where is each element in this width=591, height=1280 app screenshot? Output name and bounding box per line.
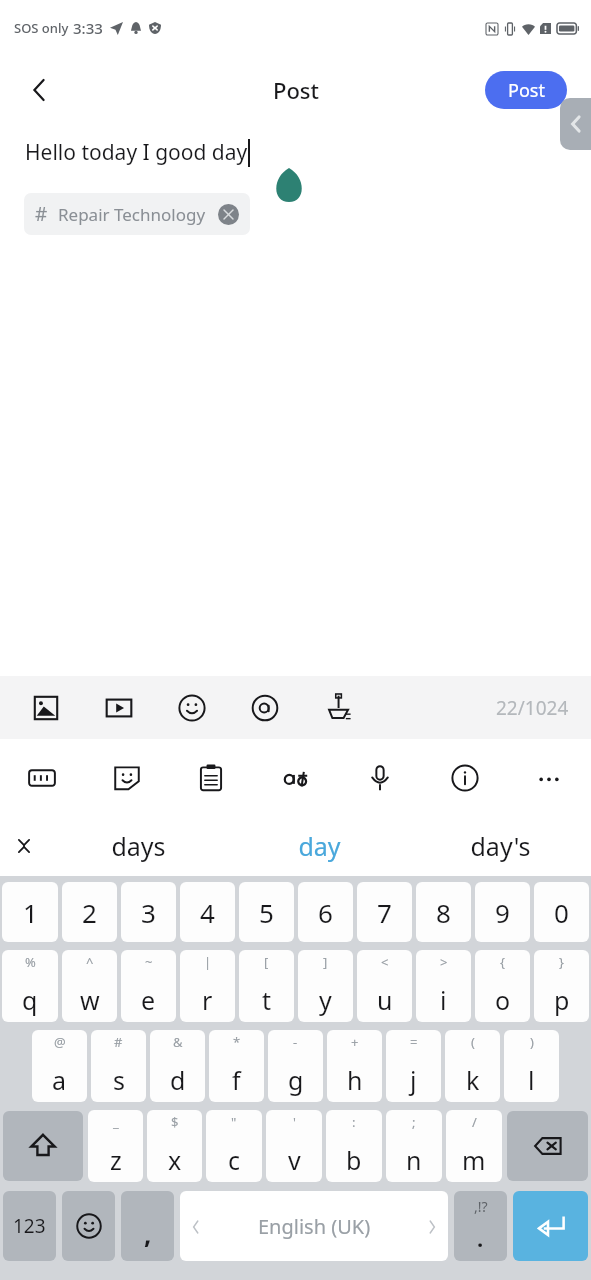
button[interactable]: Clipboard xyxy=(191,758,231,798)
staticText: , xyxy=(144,1216,152,1251)
button[interactable]: ,!? xyxy=(454,1191,507,1261)
staticText: a xyxy=(52,1063,67,1097)
button[interactable]: days xyxy=(48,816,229,876)
button[interactable]: Emoji xyxy=(62,1191,115,1261)
staticText: 6 xyxy=(318,895,333,930)
button[interactable]: Open drawer xyxy=(560,98,591,150)
staticText: & xyxy=(173,1033,183,1051)
button[interactable]: * xyxy=(209,1030,264,1102)
staticText: [ xyxy=(264,953,269,971)
staticText: @ xyxy=(54,1033,66,1051)
button[interactable]: Mention xyxy=(245,688,285,728)
button[interactable]: Info xyxy=(445,758,485,798)
button[interactable]: English (UK) xyxy=(180,1191,448,1261)
staticText: l xyxy=(528,1063,535,1097)
button[interactable]: Add hashtag xyxy=(318,688,358,728)
staticText: # xyxy=(35,201,48,227)
button[interactable]: & xyxy=(150,1030,205,1102)
staticText: | xyxy=(204,953,212,971)
staticText: v xyxy=(288,1143,301,1177)
button[interactable]: ( xyxy=(445,1030,500,1102)
button[interactable]: { xyxy=(475,950,530,1022)
button[interactable]: } xyxy=(534,950,589,1022)
button[interactable]: Collapse suggestions xyxy=(4,826,44,866)
staticText: y xyxy=(319,983,332,1017)
staticText: + xyxy=(351,1033,359,1051)
button[interactable]: Add video xyxy=(99,688,139,728)
button[interactable]: 6 xyxy=(298,882,353,942)
button[interactable]: @ xyxy=(32,1030,87,1102)
button[interactable]: Shift xyxy=(3,1111,83,1181)
staticText: h xyxy=(347,1063,363,1097)
button[interactable]: GIF xyxy=(22,758,62,798)
button[interactable]: - xyxy=(268,1030,323,1102)
staticText: b xyxy=(346,1143,362,1177)
button[interactable]: ^ xyxy=(62,950,117,1022)
button[interactable]: Backspace xyxy=(507,1111,588,1181)
button[interactable]: ; xyxy=(386,1110,442,1182)
staticText: 0 xyxy=(554,895,569,930)
staticText: . xyxy=(477,1223,484,1253)
staticText: ( xyxy=(471,1033,475,1051)
staticText: > xyxy=(440,953,448,971)
button[interactable]: : xyxy=(326,1110,382,1182)
staticText: m xyxy=(462,1143,486,1177)
button[interactable]: # xyxy=(91,1030,146,1102)
button[interactable]: = xyxy=(386,1030,441,1102)
button[interactable]: Post xyxy=(485,71,567,109)
button[interactable]: % xyxy=(2,950,58,1022)
button[interactable]: 0 xyxy=(534,882,589,942)
staticText: 3:33 xyxy=(73,18,103,38)
staticText: z xyxy=(110,1143,122,1177)
button[interactable]: day xyxy=(229,816,410,876)
button[interactable]: Add emoji xyxy=(172,688,212,728)
button[interactable]: Add image xyxy=(26,688,66,728)
staticText: t xyxy=(262,983,272,1017)
staticText: ~ xyxy=(145,953,153,971)
staticText: p xyxy=(554,983,570,1017)
button[interactable]: Voice input xyxy=(360,758,400,798)
staticText: c xyxy=(228,1143,241,1177)
button[interactable]: 7 xyxy=(357,882,412,942)
staticText: " xyxy=(231,1113,237,1131)
button[interactable]: 1 xyxy=(2,882,58,942)
button[interactable]: ' xyxy=(266,1110,322,1182)
staticText: $ xyxy=(171,1113,179,1131)
button[interactable]: | xyxy=(180,950,235,1022)
staticText: i xyxy=(440,983,447,1017)
button[interactable]: 5 xyxy=(239,882,294,942)
staticText: ,!? xyxy=(474,1197,488,1216)
button[interactable]: > xyxy=(416,950,471,1022)
staticText: = xyxy=(410,1033,418,1051)
button[interactable]: , xyxy=(121,1191,174,1261)
button[interactable]: 8 xyxy=(416,882,471,942)
button[interactable]: [ xyxy=(239,950,294,1022)
button[interactable]: ~ xyxy=(121,950,176,1022)
button[interactable]: _ xyxy=(88,1110,143,1182)
button[interactable]: Remove tag xyxy=(218,204,239,225)
button[interactable]: Language xyxy=(276,758,316,798)
button[interactable]: ) xyxy=(504,1030,559,1102)
button[interactable]: day's xyxy=(410,816,591,876)
button[interactable]: ] xyxy=(298,950,353,1022)
button[interactable]: < xyxy=(357,950,412,1022)
staticText: - xyxy=(293,1033,298,1051)
button[interactable]: 4 xyxy=(180,882,235,942)
button[interactable]: + xyxy=(327,1030,382,1102)
button[interactable]: / xyxy=(446,1110,502,1182)
button[interactable]: 2 xyxy=(62,882,117,942)
button[interactable]: Back xyxy=(16,66,64,114)
button[interactable]: $ xyxy=(147,1110,202,1182)
staticText: 8 xyxy=(436,895,451,930)
staticText: ; xyxy=(412,1113,416,1131)
button[interactable]: # xyxy=(24,193,250,235)
button[interactable]: 123 xyxy=(3,1191,56,1261)
button[interactable]: Enter xyxy=(513,1191,588,1261)
button[interactable]: 3 xyxy=(121,882,176,942)
button[interactable]: 9 xyxy=(475,882,530,942)
button[interactable]: Stickers xyxy=(107,758,147,798)
staticText: f xyxy=(232,1063,241,1097)
button[interactable]: " xyxy=(206,1110,262,1182)
staticText: g xyxy=(288,1063,304,1097)
button[interactable]: More xyxy=(529,758,569,798)
